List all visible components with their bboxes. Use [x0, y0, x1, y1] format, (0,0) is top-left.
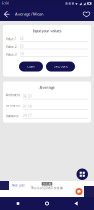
- staticText: CALCULATE: [53, 65, 67, 68]
- staticText: Harmonic:: [6, 114, 19, 118]
- button[interactable]: Back: [65, 197, 87, 210]
- button[interactable]: Home: [36, 197, 58, 210]
- button[interactable]: CALCULATE: [46, 61, 75, 71]
- staticText: Average / Mean: [15, 11, 43, 17]
- staticText: 29.17: [23, 114, 32, 117]
- staticText: 65: [20, 37, 24, 40]
- staticText: Nice job!: [12, 184, 25, 187]
- staticText: Value-1: [6, 37, 17, 41]
- button[interactable]: CLEAR: [19, 61, 43, 71]
- button[interactable]: Add to favorites: [81, 7, 92, 21]
- staticText: 31.18: [23, 105, 32, 108]
- button[interactable]: Back: [2, 7, 12, 21]
- button[interactable]: Advertisement: [0, 181, 94, 197]
- staticText: 19: [20, 52, 24, 56]
- staticText: This is a 320x50 test ad: [31, 186, 63, 190]
- staticText: 36.33: [23, 95, 32, 98]
- staticText: 25: [20, 45, 24, 48]
- staticText: Value-2: [6, 45, 17, 49]
- staticText: Average: [39, 84, 54, 90]
- staticText: 6:44: [2, 2, 9, 5]
- button[interactable]: Recent apps: [7, 197, 29, 210]
- staticText: Value-3: [6, 53, 17, 56]
- staticText: Input your values: [32, 28, 61, 33]
- staticText: CLEAR: [27, 65, 35, 68]
- staticText: Arithmetic:: [6, 93, 20, 101]
- staticText: Geometric:: [6, 104, 20, 111]
- button[interactable]: Calculator: [76, 168, 88, 180]
- staticText: Test ad: [42, 182, 51, 185]
